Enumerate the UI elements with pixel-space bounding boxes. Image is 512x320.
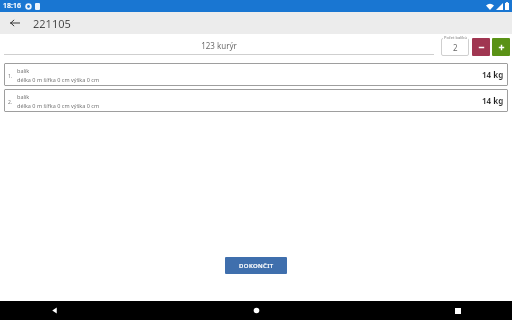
button[interactable]: DOKONČIT — [225, 257, 287, 274]
staticText: balík — [17, 93, 30, 100]
button[interactable]: Back — [7, 15, 23, 31]
staticText: DOKONČIT — [239, 262, 274, 270]
staticText: Počet balíků — [444, 35, 467, 40]
staticText: 14 kg — [482, 95, 504, 106]
button[interactable]: Back — [24, 301, 84, 320]
staticText: 18:16 — [3, 1, 21, 11]
staticText: balík — [17, 67, 30, 74]
button[interactable]: Increase count — [492, 38, 510, 56]
staticText: 123 kurýr — [4, 40, 434, 51]
staticText: 2 — [453, 42, 458, 53]
staticText: délka 0 m šířka 0 cm výška 0 cm — [17, 102, 100, 109]
button[interactable]: Home — [226, 301, 286, 320]
button[interactable]: 1. — [4, 63, 508, 86]
button[interactable]: Decrease count — [472, 38, 490, 56]
button[interactable]: 2. — [4, 89, 508, 112]
button[interactable]: 123 kurýr — [4, 34, 434, 55]
staticText: 1. — [8, 73, 13, 80]
staticText: 221105 — [33, 16, 71, 31]
staticText: 14 kg — [482, 69, 504, 80]
staticText: délka 0 m šířka 0 cm výška 0 cm — [17, 76, 100, 83]
staticText: 2. — [8, 99, 13, 106]
button[interactable]: Recent apps — [428, 301, 488, 320]
button[interactable]: 2 — [441, 38, 469, 56]
